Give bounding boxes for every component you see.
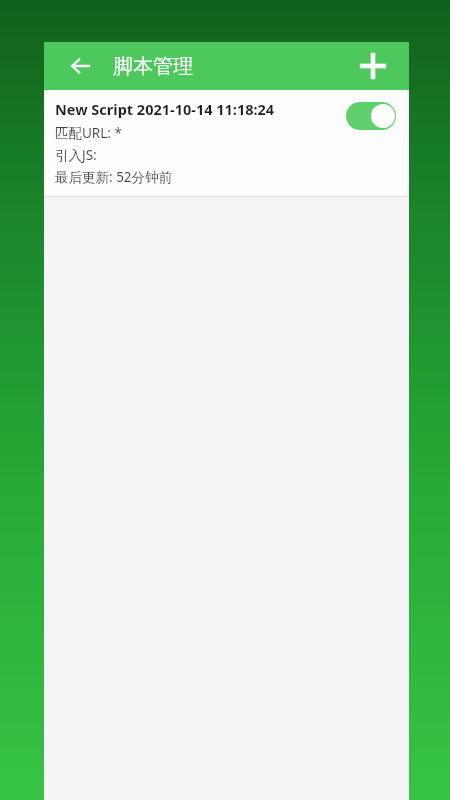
staticText: 最后更新: 52分钟前 — [55, 168, 173, 186]
button[interactable]: Add script — [351, 44, 395, 88]
staticText: 引入JS: — [55, 146, 97, 164]
staticText: New Script 2021-10-14 11:18:24 — [55, 99, 275, 119]
button[interactable]: Back — [58, 44, 102, 88]
staticText: 匹配URL: * — [55, 124, 122, 142]
button[interactable]: Enable script — [345, 101, 397, 131]
button[interactable]: New Script 2021-10-14 11:18:24 — [44, 90, 409, 197]
staticText: 脚本管理 — [113, 54, 193, 79]
